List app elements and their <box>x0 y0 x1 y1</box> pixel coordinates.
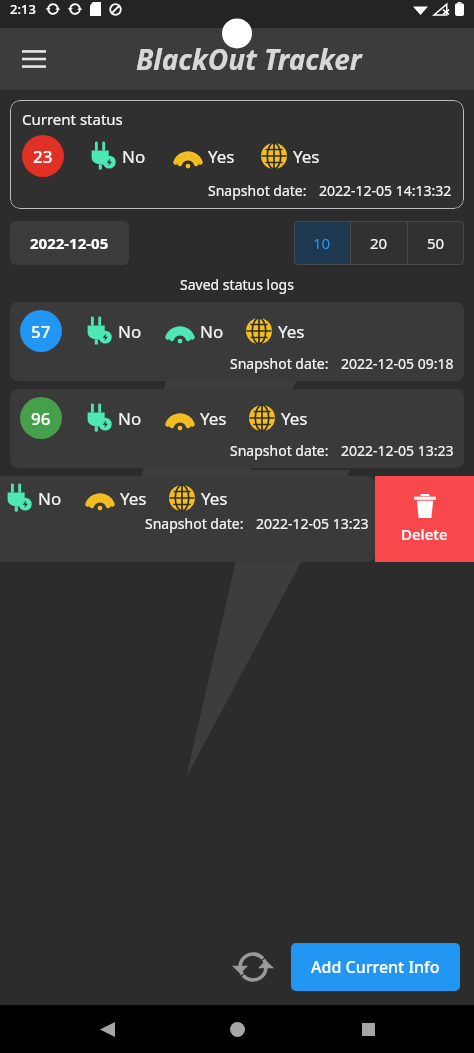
button[interactable]: Add Current Info <box>291 943 460 991</box>
staticText: Delete <box>401 524 448 544</box>
staticText: Snapshot date: <box>145 514 244 533</box>
staticText: BlackOut Tracker <box>136 40 362 78</box>
staticText: 20 <box>370 233 388 253</box>
staticText: 10 <box>313 233 331 253</box>
button[interactable]: No <box>0 476 375 562</box>
button[interactable]: 57 <box>10 302 464 381</box>
button[interactable]: Refresh <box>229 943 277 991</box>
button[interactable]: Home <box>213 1005 261 1053</box>
staticText: No <box>122 145 146 168</box>
button[interactable]: 20 <box>351 221 407 265</box>
staticText: 57 <box>31 320 51 343</box>
button[interactable]: Back <box>83 1005 131 1053</box>
staticText: 2:13 <box>10 0 36 18</box>
button[interactable]: 2022-12-05 <box>10 221 129 265</box>
staticText: 23 <box>33 145 53 168</box>
staticText: Snapshot date: <box>230 441 329 460</box>
staticText: No <box>200 320 224 343</box>
staticText: Yes <box>200 407 227 430</box>
button[interactable]: 50 <box>408 221 464 265</box>
staticText: 2022-12-05 09:18 <box>341 354 454 373</box>
staticText: 2022-12-05 <box>30 233 109 253</box>
button[interactable]: Current status <box>10 100 464 209</box>
staticText: Yes <box>120 487 147 510</box>
staticText: Yes <box>281 407 308 430</box>
staticText: No <box>118 320 142 343</box>
staticText: Yes <box>201 487 228 510</box>
button[interactable]: 96 <box>10 389 464 468</box>
staticText: 2022-12-05 13:23 <box>256 514 369 533</box>
button[interactable]: Open navigation menu <box>10 35 58 83</box>
staticText: Add Current Info <box>311 956 440 978</box>
staticText: 2022-12-05 14:13:32 <box>319 181 452 200</box>
staticText: Snapshot date: <box>230 354 329 373</box>
button[interactable]: 10 <box>294 221 350 265</box>
staticText: Current status <box>22 109 123 129</box>
staticText: 2022-12-05 13:23 <box>341 441 454 460</box>
button[interactable]: Delete <box>375 476 474 562</box>
staticText: No <box>118 407 142 430</box>
staticText: Yes <box>208 145 235 168</box>
staticText: Snapshot date: <box>208 181 307 200</box>
staticText: 50 <box>427 233 445 253</box>
staticText: No <box>38 487 62 510</box>
staticText: 96 <box>31 407 51 430</box>
staticText: Yes <box>293 145 320 168</box>
button[interactable]: Recent apps <box>344 1005 392 1053</box>
staticText: Saved status logs <box>0 275 474 294</box>
staticText: Yes <box>278 320 305 343</box>
